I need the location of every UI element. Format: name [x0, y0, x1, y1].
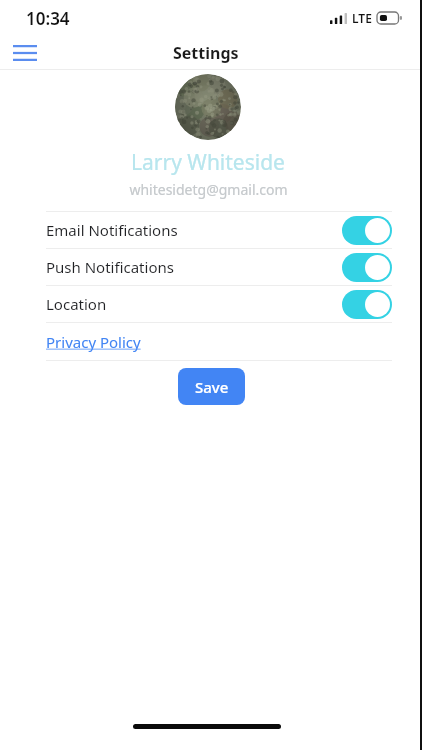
button[interactable]: Toggle on [342, 290, 392, 319]
button[interactable]: Toggle on [342, 216, 392, 245]
staticText: Larry Whiteside [131, 148, 285, 177]
staticText: Email Notifications [46, 220, 178, 240]
button[interactable]: Toggle on [342, 253, 392, 282]
staticText: Location [46, 294, 107, 314]
button[interactable]: Email Notifications [46, 212, 392, 248]
staticText: whitesidetg@gmail.com [129, 180, 288, 199]
staticText: 10:34 [26, 7, 70, 30]
button[interactable]: Profile photo [175, 74, 241, 140]
button[interactable]: Privacy Policy [46, 323, 392, 360]
staticText: Settings [173, 42, 239, 64]
button[interactable]: Menu [8, 36, 42, 70]
staticText: Privacy Policy [46, 332, 141, 352]
button[interactable]: Save [178, 368, 245, 405]
button[interactable]: Push Notifications [46, 249, 392, 285]
button[interactable]: Location [46, 286, 392, 322]
staticText: LTE [352, 10, 372, 26]
staticText: Save [195, 377, 229, 397]
staticText: Push Notifications [46, 257, 174, 277]
